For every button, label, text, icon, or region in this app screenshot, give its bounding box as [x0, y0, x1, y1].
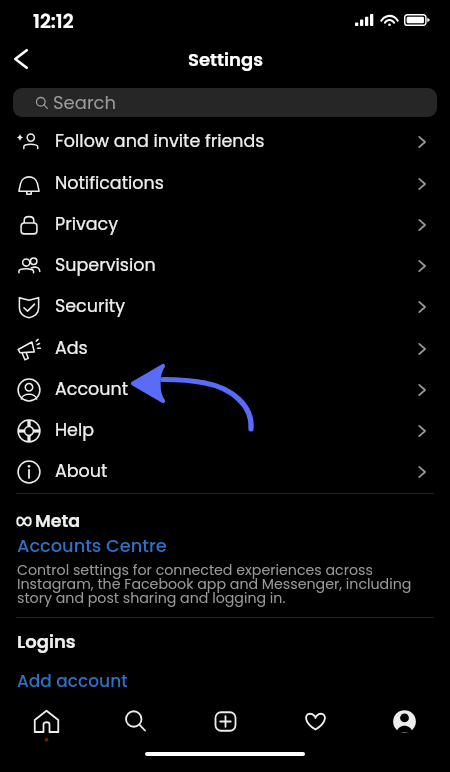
button[interactable]: Notifications [0, 163, 450, 204]
button[interactable]: Add account [17, 669, 128, 693]
staticText: Settings [188, 47, 263, 72]
button[interactable]: Search [105, 699, 165, 743]
button[interactable]: Account [0, 369, 450, 410]
staticText: Account [55, 377, 129, 402]
staticText: Logins [17, 629, 76, 654]
staticText: Ads [55, 336, 88, 361]
button[interactable]: Search [13, 88, 437, 117]
button[interactable]: Accounts Centre [17, 533, 167, 558]
staticText: Control settings for connected experienc… [17, 560, 433, 608]
button[interactable]: Home [16, 699, 76, 743]
staticText: Privacy [55, 212, 119, 237]
staticText: Meta [35, 509, 81, 534]
staticText: 12:12 [33, 8, 74, 35]
button[interactable]: Follow and invite friends [0, 121, 450, 162]
staticText: About [55, 459, 108, 484]
button[interactable]: Ads [0, 328, 450, 369]
button[interactable]: Back [1, 39, 41, 79]
button[interactable]: Create [195, 699, 255, 743]
button[interactable]: Security [0, 286, 450, 327]
button[interactable]: Activity [285, 699, 345, 743]
staticText: Follow and invite friends [55, 129, 265, 154]
staticText: Security [55, 294, 125, 319]
staticText: Search [53, 90, 117, 115]
staticText: Supervision [55, 253, 156, 278]
staticText: Notifications [55, 171, 164, 196]
button[interactable]: Privacy [0, 204, 450, 245]
button[interactable]: About [0, 451, 450, 492]
button[interactable]: Profile [374, 699, 434, 743]
button[interactable]: Help [0, 410, 450, 451]
button[interactable]: Supervision [0, 245, 450, 286]
staticText: Help [55, 418, 95, 443]
